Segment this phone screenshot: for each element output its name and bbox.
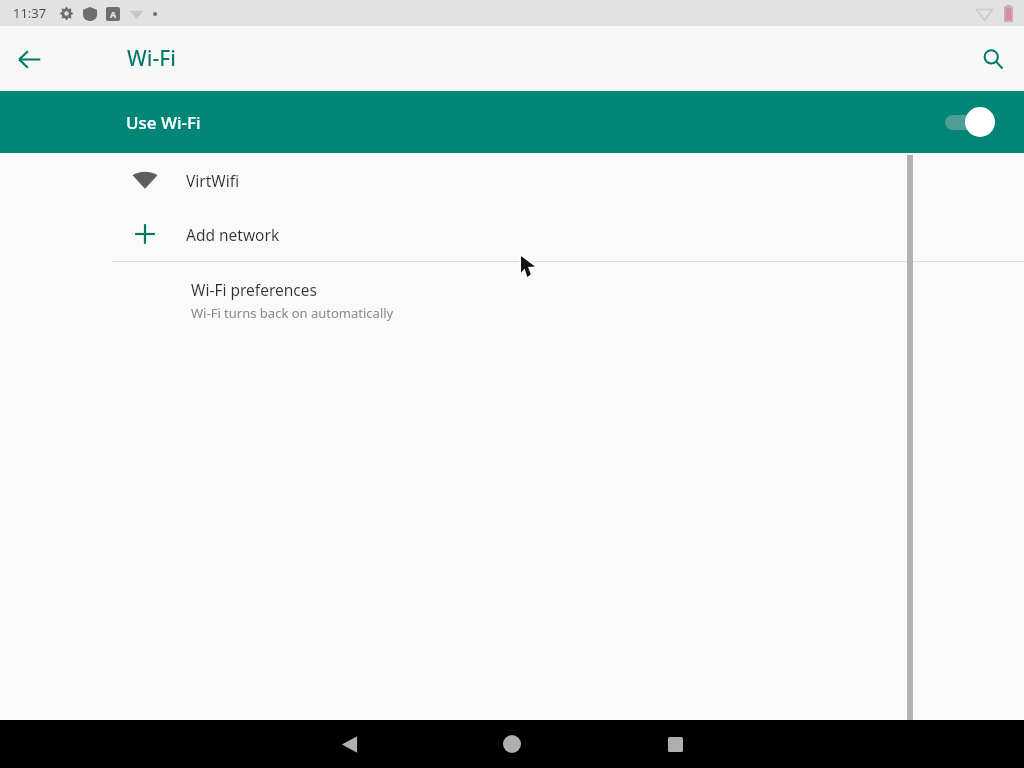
staticText: Use Wi-Fi [126,111,201,134]
staticText: Add network [186,224,280,245]
staticText: Wi-Fi turns back on automatically [191,304,394,322]
staticText: Wi-Fi [127,44,176,73]
button[interactable]: Add network [0,207,1024,261]
staticText: A [110,8,117,20]
button[interactable]: Back [325,720,373,768]
button[interactable]: Navigate up [5,35,53,83]
staticText: 11:37 [13,4,47,22]
button[interactable]: Recent apps [651,720,699,768]
button[interactable]: Home [488,720,536,768]
button[interactable]: Search [969,35,1017,83]
staticText: VirtWifi [186,170,240,191]
staticText: Wi-Fi preferences [191,279,317,300]
button[interactable]: Wi-Fi preferences [0,262,1024,336]
button[interactable]: Use Wi-Fi [0,91,1024,153]
button[interactable]: VirtWifi [0,153,1024,207]
